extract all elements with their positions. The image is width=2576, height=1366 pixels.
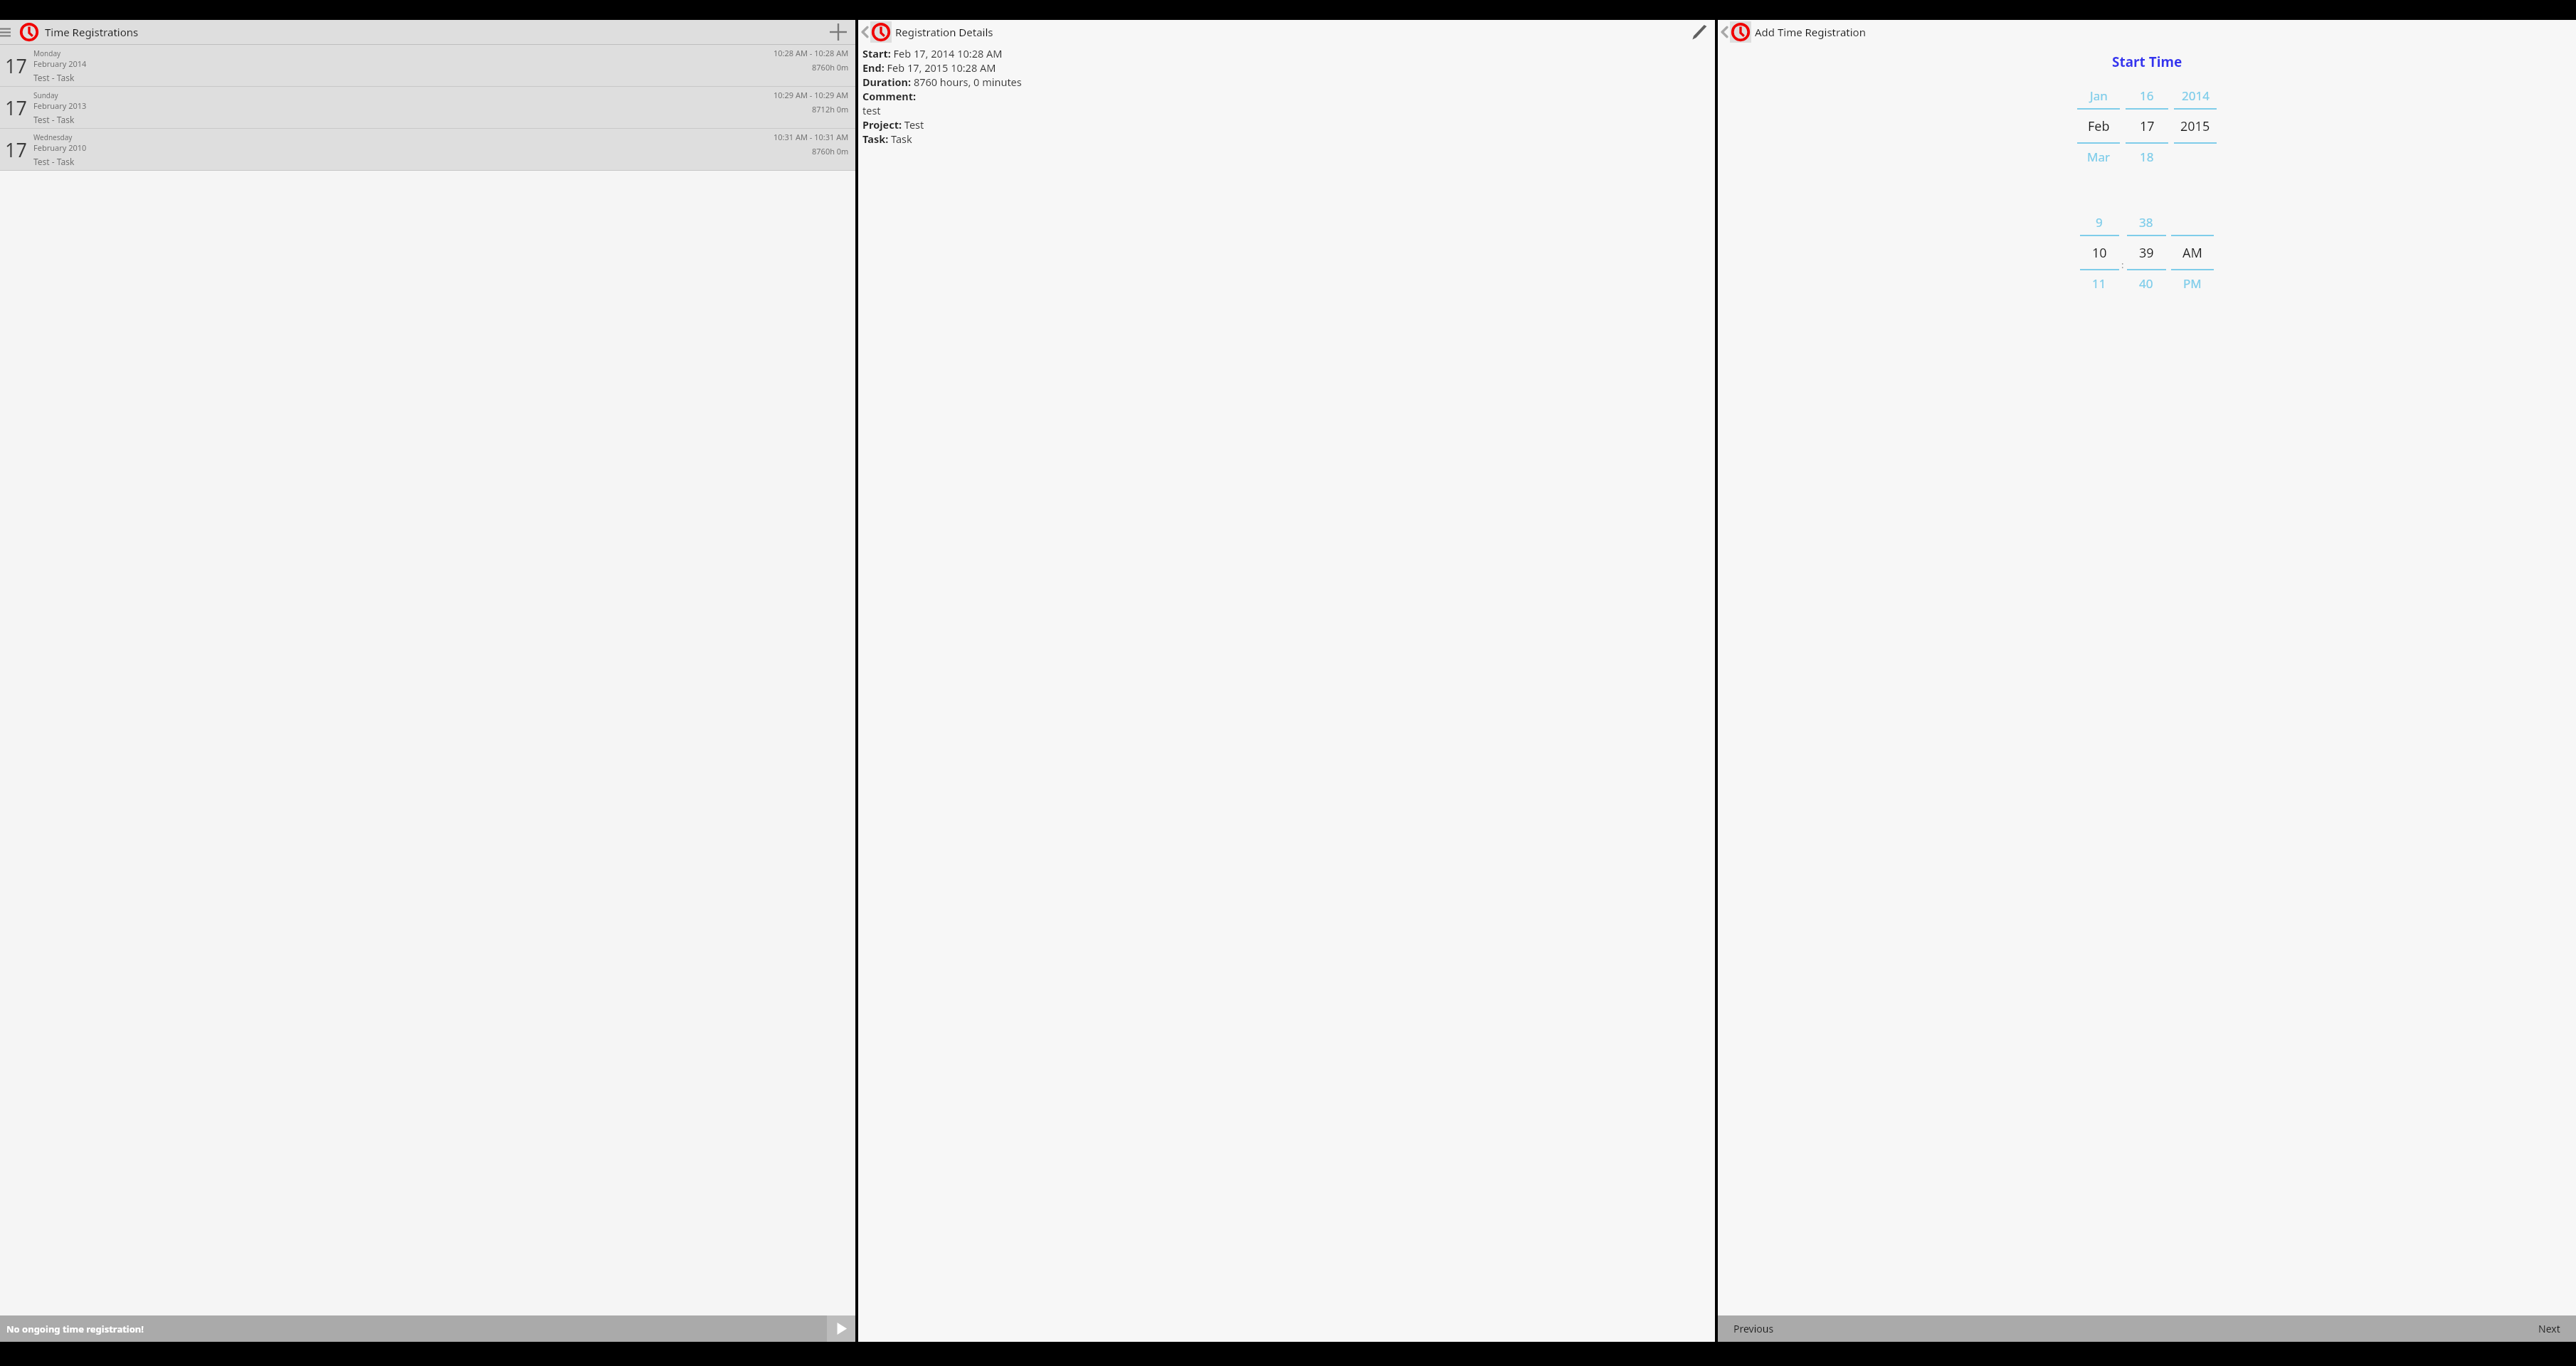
staticText: 17 xyxy=(2140,117,2155,135)
staticText: Project: Test xyxy=(862,117,924,132)
staticText: Sunday xyxy=(33,90,58,100)
button[interactable]: 38 xyxy=(2124,209,2168,296)
staticText: Previous xyxy=(1733,1322,1774,1335)
staticText: Test - Task xyxy=(33,114,75,125)
staticText: 40 xyxy=(2139,275,2153,292)
staticText: 17 xyxy=(5,95,27,121)
staticText: 8760h 0m xyxy=(812,62,849,73)
button[interactable]: Back xyxy=(1719,25,1730,39)
staticText: Add Time Registration xyxy=(1755,25,1866,39)
button[interactable]: 2014 xyxy=(2171,83,2219,169)
button[interactable]: Jan xyxy=(2074,83,2123,169)
button[interactable]: Edit xyxy=(1687,20,1711,44)
staticText: : xyxy=(2121,258,2124,271)
staticText: 9 xyxy=(2096,214,2103,231)
staticText: test xyxy=(862,103,881,117)
staticText: Jan xyxy=(2090,88,2108,104)
staticText: Time Registrations xyxy=(45,25,139,39)
staticText: February 2014 xyxy=(33,58,87,69)
staticText: 10:29 AM - 10:29 AM xyxy=(774,90,849,100)
staticText: 18 xyxy=(2140,149,2154,165)
staticText: End: Feb 17, 2015 10:28 AM xyxy=(862,60,996,75)
staticText: AM xyxy=(2182,244,2202,262)
staticText: Start: Feb 17, 2014 10:28 AM xyxy=(862,46,1003,60)
button[interactable]: Back xyxy=(860,25,870,39)
button[interactable]: 16 xyxy=(2123,83,2171,169)
button[interactable]: Menu xyxy=(0,23,19,41)
staticText: Feb xyxy=(2088,117,2110,135)
button[interactable]: 17 xyxy=(0,45,855,87)
staticText: 10:28 AM - 10:28 AM xyxy=(774,48,849,58)
button[interactable]: AM xyxy=(2168,209,2217,296)
staticText: February 2010 xyxy=(33,142,87,153)
button[interactable]: 17 xyxy=(0,129,855,171)
staticText: Comment: xyxy=(862,89,917,103)
staticText: Task: Task xyxy=(862,132,912,146)
staticText: PM xyxy=(2183,275,2202,292)
staticText: 10 xyxy=(2092,244,2107,262)
staticText: Wednesday xyxy=(33,132,73,142)
staticText: Test - Task xyxy=(33,72,75,83)
staticText: 17 xyxy=(5,53,27,79)
staticText: Next xyxy=(2538,1322,2560,1335)
staticText: Mar xyxy=(2087,149,2110,165)
button[interactable]: Start timer xyxy=(827,1315,855,1342)
button[interactable]: Next xyxy=(2147,1315,2576,1342)
staticText: 38 xyxy=(2139,214,2153,231)
staticText: Duration: 8760 hours, 0 minutes xyxy=(862,75,1022,89)
button[interactable]: Previous xyxy=(1718,1315,2147,1342)
staticText: 11 xyxy=(2092,275,2106,292)
staticText: 8760h 0m xyxy=(812,146,849,157)
staticText: 2015 xyxy=(2180,117,2210,135)
staticText: No ongoing time registration! xyxy=(6,1323,144,1335)
staticText: 10:31 AM - 10:31 AM xyxy=(774,132,849,142)
button[interactable]: No ongoing time registration! xyxy=(0,1315,827,1342)
staticText: 2014 xyxy=(2182,88,2210,104)
staticText: Test - Task xyxy=(33,156,75,167)
staticText: Start Time xyxy=(2112,53,2182,71)
button[interactable]: Add xyxy=(824,20,852,44)
staticText: Monday xyxy=(33,48,61,58)
button[interactable]: 17 xyxy=(0,87,855,129)
staticText: 39 xyxy=(2139,244,2154,262)
staticText: 8712h 0m xyxy=(812,104,849,115)
staticText: 17 xyxy=(5,137,27,163)
staticText: 16 xyxy=(2140,88,2154,104)
button[interactable]: 9 xyxy=(2077,209,2121,296)
staticText: February 2013 xyxy=(33,100,87,111)
staticText: Registration Details xyxy=(895,25,993,39)
